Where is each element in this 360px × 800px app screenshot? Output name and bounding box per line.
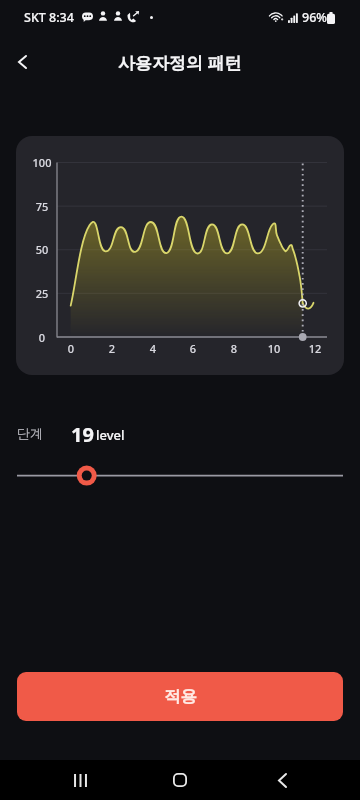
staticText: 0 — [25, 330, 59, 345]
staticText: 4 — [139, 341, 167, 356]
staticText: 100 — [25, 155, 59, 170]
button[interactable]: 적용 — [17, 672, 343, 721]
staticText: 8 — [220, 341, 248, 356]
staticText: 6 — [179, 341, 207, 356]
staticText: 사용자정의 패턴 — [118, 51, 242, 74]
staticText: SKT 8:34 — [24, 9, 74, 26]
button[interactable]: Home — [155, 760, 205, 800]
staticText: 10 — [260, 341, 288, 356]
staticText: 25 — [25, 286, 59, 301]
button[interactable]: Recent apps — [55, 760, 105, 800]
button[interactable]: Level slider — [0, 456, 360, 496]
staticText: 2 — [98, 341, 126, 356]
staticText: 12 — [301, 341, 329, 356]
staticText: 0 — [57, 341, 85, 356]
staticText: 96% — [302, 9, 327, 26]
staticText: level — [96, 426, 125, 444]
staticText: 적용 — [164, 686, 197, 707]
button[interactable]: Back — [0, 40, 44, 84]
staticText: 단계 — [17, 425, 43, 441]
staticText: 19 — [71, 421, 94, 445]
button[interactable]: Back — [257, 760, 307, 800]
staticText: 75 — [25, 199, 59, 214]
staticText: 50 — [25, 242, 59, 257]
